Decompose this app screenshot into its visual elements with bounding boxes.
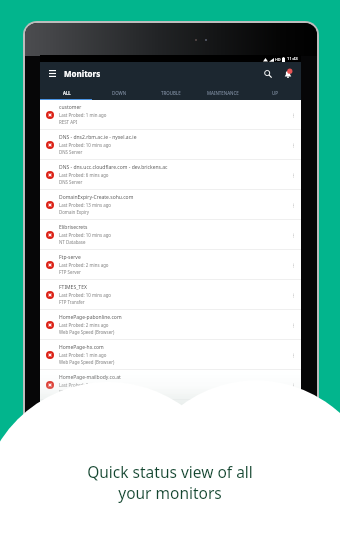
button[interactable]: More options [288, 110, 298, 120]
staticText: REST API [59, 119, 78, 125]
button[interactable]: DOWN [93, 85, 145, 100]
staticText: Last Probed: 10 mins ago [59, 142, 112, 148]
staticText: Monitors [64, 68, 101, 79]
staticText: Elibrisecrets [59, 224, 88, 231]
button[interactable]: TROUBLE [145, 85, 197, 100]
button[interactable]: Ftp-serve [40, 250, 301, 280]
staticText: DomainExpiry-Create.sohu.com [59, 194, 134, 201]
staticText: Web Page Speed (Browser) [59, 359, 115, 365]
button[interactable]: HomePage-pabonline.com [40, 310, 301, 340]
staticText: Last Probed: 10 mins ago [59, 292, 112, 298]
button[interactable]: Notifications [281, 67, 295, 81]
button[interactable]: HomePage-mailbody.co.at [40, 370, 301, 400]
staticText: Web Page Speed [59, 389, 94, 395]
button[interactable]: DomainExpiry-Create.sohu.com [40, 190, 301, 220]
staticText: Last Probed: 13 mins ago [59, 202, 112, 208]
staticText: Last Probed: 6 mins ago [59, 172, 109, 178]
staticText: Last Probed: 10 mins ago [59, 232, 112, 238]
button[interactable]: More options [288, 320, 298, 330]
staticText: Last Probed: 1 min ago [59, 352, 107, 358]
staticText: HomePage-pabonline.com [59, 314, 122, 321]
button[interactable]: More options [288, 230, 298, 240]
button[interactable]: DNS - dns2.rbm.ac.ie - nyxel.ac.ie [40, 130, 301, 160]
staticText: ALL [63, 90, 71, 96]
button[interactable]: UP [249, 85, 301, 100]
button[interactable]: More options [288, 380, 298, 390]
button[interactable]: Search [261, 67, 275, 81]
staticText: HomePage-mailbody.co.at [59, 374, 121, 381]
staticText: Last Probed: 1 min ago [59, 112, 107, 118]
staticText: DNS Server [59, 179, 83, 185]
button[interactable]: FTIMES_TEX [40, 280, 301, 310]
button[interactable]: More options [288, 170, 298, 180]
staticText: 11:43 [287, 56, 298, 62]
staticText: Last Probed: 2 mins ago [59, 382, 109, 388]
staticText: customer [59, 104, 82, 111]
button[interactable]: MAINTENANCE [197, 85, 249, 100]
staticText: FTP Server [59, 269, 81, 275]
staticText: Quick status view of all your monitors [87, 461, 253, 504]
button[interactable]: ALL [40, 85, 93, 100]
staticText: Last Probed: 2 mins ago [59, 322, 109, 328]
staticText: Last Probed: 2 mins ago [59, 262, 109, 268]
button[interactable]: More options [288, 290, 298, 300]
staticText: NT Database [59, 239, 86, 245]
button[interactable]: HomePage-hx.com [40, 340, 301, 370]
staticText: DNS Server [59, 149, 83, 155]
staticText: MAINTENANCE [207, 90, 239, 96]
button[interactable]: Elibrisecrets [40, 220, 301, 250]
button[interactable]: More options [288, 140, 298, 150]
staticText: Web Page Speed (Browser) [59, 329, 115, 335]
staticText: Domain Expiry [59, 209, 90, 215]
staticText: Ftp-serve [59, 254, 81, 261]
staticText: HomePage-hx.com [59, 344, 104, 351]
staticText: TROUBLE [161, 90, 181, 96]
staticText: DNS - dns2.rbm.ac.ie - nyxel.ac.ie [59, 134, 137, 141]
button[interactable]: DNS - dns.ucc.cloudflare.com - dev.brick… [40, 160, 301, 190]
staticText: FTP Transfer [59, 299, 85, 305]
staticText: FTIMES_TEX [59, 284, 87, 291]
staticText: UP [272, 90, 278, 96]
staticText: DOWN [112, 90, 127, 96]
button[interactable]: Menu [46, 67, 59, 80]
button[interactable]: customer [40, 100, 301, 130]
button[interactable]: More options [288, 200, 298, 210]
button[interactable]: More options [288, 260, 298, 270]
staticText: HD [275, 57, 281, 62]
staticText: DNS - dns.ucc.cloudflare.com - dev.brick… [59, 164, 168, 171]
button[interactable]: More options [288, 350, 298, 360]
